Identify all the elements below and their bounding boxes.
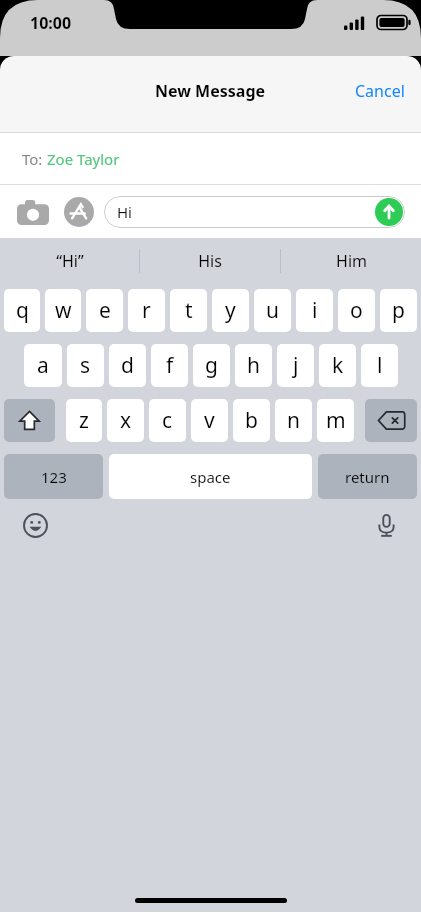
button[interactable]: p <box>380 289 417 332</box>
button[interactable]: His <box>140 238 280 283</box>
button[interactable]: i <box>296 289 333 332</box>
staticText: d <box>121 351 134 380</box>
button[interactable]: o <box>338 289 375 332</box>
button[interactable]: Send <box>375 198 403 226</box>
staticText: l <box>377 351 383 380</box>
staticText: j <box>293 351 299 380</box>
button[interactable]: h <box>235 344 272 387</box>
button[interactable]: Shift <box>4 399 55 442</box>
staticText: x <box>120 406 132 435</box>
staticText: t <box>185 296 193 325</box>
button[interactable]: Emoji <box>19 509 51 541</box>
staticText: q <box>16 296 29 325</box>
staticText: g <box>205 351 218 380</box>
button[interactable]: k <box>319 344 356 387</box>
staticText: p <box>392 296 405 325</box>
button[interactable]: m <box>317 399 354 442</box>
button[interactable]: f <box>151 344 188 387</box>
button[interactable]: s <box>67 344 104 387</box>
button[interactable]: 123 <box>4 454 103 499</box>
staticText: f <box>166 351 174 380</box>
staticText: His <box>198 250 222 272</box>
staticText: a <box>37 351 49 380</box>
button[interactable]: z <box>66 399 102 442</box>
button[interactable]: q <box>4 289 40 332</box>
staticText: h <box>247 351 260 380</box>
staticText: 10:00 <box>30 12 72 34</box>
button[interactable]: l <box>361 344 398 387</box>
button[interactable]: w <box>45 289 81 332</box>
button[interactable]: d <box>109 344 146 387</box>
staticText: r <box>142 296 151 325</box>
button[interactable]: Hi <box>104 196 405 228</box>
button[interactable]: x <box>107 399 144 442</box>
staticText: i <box>312 296 318 325</box>
button[interactable]: b <box>233 399 270 442</box>
button[interactable]: Camera <box>14 193 52 231</box>
staticText: Him <box>336 250 367 272</box>
button[interactable]: space <box>109 454 312 499</box>
staticText: y <box>225 296 236 325</box>
staticText: 123 <box>41 467 67 487</box>
button[interactable]: return <box>318 454 417 499</box>
staticText: c <box>162 406 173 435</box>
button[interactable]: g <box>193 344 230 387</box>
staticText: o <box>350 296 363 325</box>
staticText: m <box>326 406 346 435</box>
staticText: w <box>55 296 72 325</box>
staticText: u <box>266 296 279 325</box>
staticText: v <box>204 406 215 435</box>
button[interactable]: n <box>275 399 312 442</box>
staticText: New Message <box>155 80 266 102</box>
staticText: space <box>190 467 231 487</box>
button[interactable]: Cancel <box>339 72 421 110</box>
button[interactable]: t <box>170 289 207 332</box>
button[interactable]: App Store <box>60 193 98 231</box>
staticText: e <box>99 296 111 325</box>
staticText: To: <box>22 149 47 169</box>
button[interactable]: v <box>191 399 228 442</box>
staticText: z <box>79 406 89 435</box>
staticText: Zoe Taylor <box>47 149 120 169</box>
staticText: Cancel <box>355 80 405 102</box>
staticText: Hi <box>117 202 132 222</box>
staticText: n <box>287 406 300 435</box>
button[interactable]: To: <box>0 133 421 185</box>
staticText: b <box>245 406 258 435</box>
button[interactable]: e <box>86 289 123 332</box>
button[interactable]: u <box>254 289 291 332</box>
button[interactable]: a <box>24 344 62 387</box>
button[interactable]: Delete <box>365 399 417 442</box>
button[interactable]: c <box>149 399 186 442</box>
button[interactable]: y <box>212 289 249 332</box>
staticText: s <box>80 351 91 380</box>
button[interactable]: Him <box>281 238 421 283</box>
button[interactable]: Dictate <box>370 509 402 541</box>
staticText: return <box>345 467 390 487</box>
button[interactable]: “Hi” <box>0 238 139 283</box>
staticText: k <box>332 351 344 380</box>
button[interactable]: j <box>277 344 314 387</box>
staticText: “Hi” <box>56 250 84 272</box>
button[interactable]: r <box>128 289 165 332</box>
